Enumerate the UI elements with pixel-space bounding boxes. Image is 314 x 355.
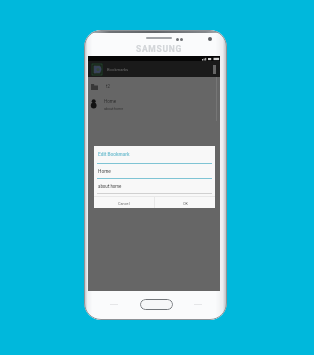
button[interactable]: Home: [88, 96, 220, 118]
button[interactable]: Bookmarks: [88, 61, 220, 77]
staticText: Edit Bookmark: [98, 151, 130, 157]
staticText: OK: [183, 201, 188, 205]
button[interactable]: Cancel: [94, 197, 154, 208]
staticText: Cancel: [118, 201, 130, 205]
button[interactable]: t2: [88, 77, 220, 96]
staticText: Home: [98, 168, 111, 174]
button[interactable]: OK: [155, 197, 215, 208]
staticText: Home: [104, 99, 117, 104]
staticText: SAMSUNG: [136, 44, 182, 54]
staticText: Bookmarks: [107, 67, 129, 72]
staticText: t2: [106, 84, 111, 89]
button[interactable]: More options: [208, 61, 220, 77]
staticText: about:home: [104, 107, 124, 111]
staticText: about:home: [98, 183, 122, 189]
